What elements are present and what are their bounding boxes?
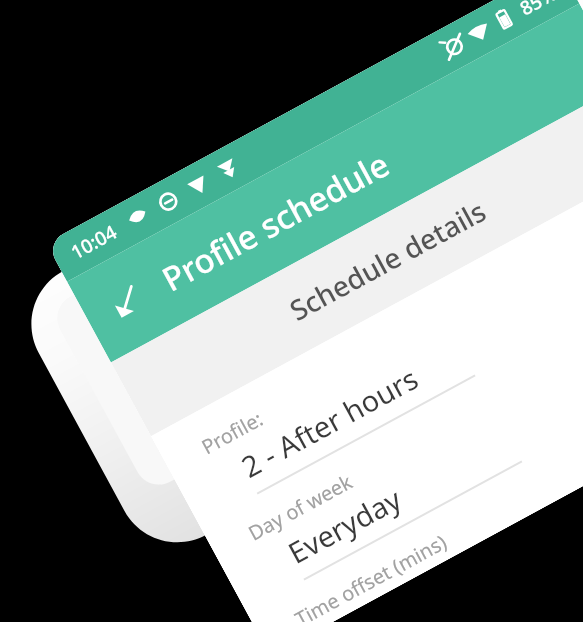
button[interactable]: Schedule details [111,84,583,436]
staticText: Profile schedule [154,141,397,301]
staticText: Day of week [243,468,357,546]
staticText: 10:04 [66,219,122,265]
button[interactable]: Day of week [237,270,583,596]
staticText: 2 - After hours [234,358,425,486]
staticText: Profile: [197,405,267,460]
button[interactable]: Back [91,267,161,337]
button[interactable]: Profile: [190,184,583,510]
staticText: Schedule details [283,191,492,329]
staticText: 85% [515,0,561,21]
staticText: Time offset (mins) [290,528,451,622]
button[interactable]: Time offset (mins) [283,356,583,622]
staticText: Everyday [281,479,408,572]
